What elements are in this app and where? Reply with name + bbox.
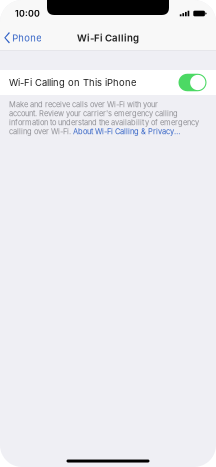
- staticText: Make and receive calls over Wi-Fi with y…: [9, 100, 199, 136]
- button[interactable]: Phone: [0, 26, 47, 50]
- button[interactable]: Wi-Fi Calling on This iPhone: [0, 70, 216, 95]
- staticText: Wi-Fi Calling on This iPhone: [9, 77, 136, 88]
- staticText: Phone: [12, 32, 41, 44]
- staticText: Wi-Fi Calling: [77, 32, 139, 44]
- staticText: 10:00: [15, 8, 40, 19]
